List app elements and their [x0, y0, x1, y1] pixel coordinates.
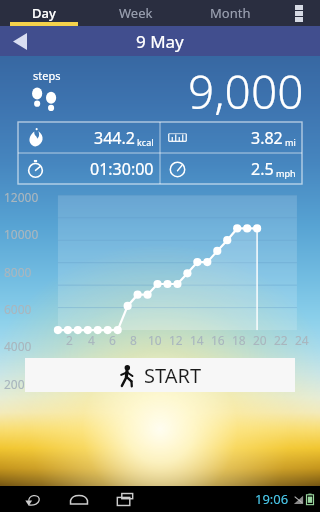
- button[interactable]: Recent apps: [108, 487, 142, 511]
- staticText: 10: [148, 332, 162, 348]
- button[interactable]: START: [25, 358, 295, 392]
- staticText: 9,000: [188, 60, 304, 123]
- button[interactable]: Back: [16, 487, 50, 511]
- button[interactable]: 2.5: [160, 153, 302, 184]
- staticText: 12000: [4, 189, 39, 205]
- button[interactable]: 3.82: [160, 122, 302, 153]
- staticText: 22: [274, 332, 288, 348]
- button[interactable]: Month: [183, 0, 278, 26]
- staticText: 6000: [4, 301, 32, 317]
- staticText: steps: [33, 68, 61, 83]
- staticText: 2000: [4, 376, 32, 392]
- button[interactable]: Home: [62, 487, 96, 511]
- staticText: 2: [66, 332, 73, 348]
- staticText: kcal: [137, 136, 154, 148]
- button[interactable]: 01:30:00: [18, 153, 160, 184]
- staticText: 2.5: [251, 158, 274, 180]
- staticText: 20: [253, 332, 267, 348]
- staticText: 6: [109, 332, 116, 348]
- button[interactable]: Week: [88, 0, 183, 26]
- staticText: 8000: [4, 264, 32, 280]
- staticText: mi: [285, 136, 296, 148]
- staticText: 14: [190, 332, 204, 348]
- staticText: 01:30:00: [90, 158, 154, 180]
- staticText: 3.82: [251, 127, 283, 149]
- staticText: Day: [32, 4, 56, 22]
- staticText: 10000: [4, 226, 39, 242]
- staticText: 344.2: [94, 127, 135, 149]
- staticText: Week: [119, 4, 153, 22]
- staticText: 8: [130, 332, 137, 348]
- staticText: 12: [169, 332, 183, 348]
- staticText: 4000: [4, 338, 32, 354]
- staticText: 19:06: [255, 490, 289, 508]
- staticText: START: [144, 362, 202, 389]
- staticText: 4: [88, 332, 95, 348]
- staticText: 9 May: [136, 30, 184, 53]
- button[interactable]: Day: [0, 0, 88, 26]
- staticText: mph: [276, 167, 296, 179]
- staticText: Month: [210, 4, 251, 22]
- staticText: 24: [295, 332, 309, 348]
- staticText: 16: [211, 332, 225, 348]
- button[interactable]: 344.2: [18, 122, 160, 153]
- staticText: 18: [232, 332, 246, 348]
- button[interactable]: Previous day: [0, 26, 40, 56]
- button[interactable]: More options: [278, 0, 320, 26]
